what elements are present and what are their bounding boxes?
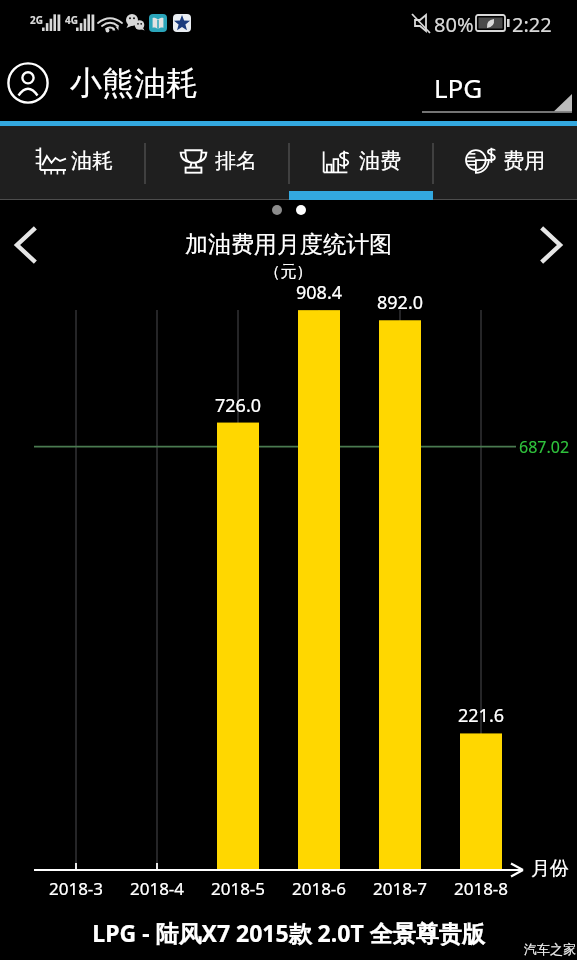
staticText: 221.6 bbox=[441, 703, 521, 728]
staticText: 小熊油耗 bbox=[70, 63, 198, 103]
staticText: 80% bbox=[434, 11, 474, 38]
other: Account bbox=[7, 62, 49, 104]
staticText: 2G bbox=[30, 13, 43, 27]
staticText: 2018-8 bbox=[437, 877, 525, 900]
staticText: LPG bbox=[434, 70, 483, 105]
button[interactable]: 排名 bbox=[145, 126, 289, 200]
button[interactable]: Previous month range bbox=[8, 222, 44, 268]
button[interactable]: LPG bbox=[414, 55, 572, 113]
staticText: 2018-6 bbox=[275, 877, 363, 900]
staticText: 908.4 bbox=[279, 280, 359, 305]
staticText: 汽车之家 bbox=[524, 941, 576, 957]
button[interactable]: 油费 bbox=[289, 126, 433, 200]
staticText: 4G bbox=[65, 13, 78, 27]
staticText: （元） bbox=[0, 262, 577, 282]
button[interactable]: 油耗 bbox=[0, 126, 145, 200]
staticText: 726.0 bbox=[198, 393, 278, 418]
staticText: 2018-4 bbox=[113, 877, 201, 900]
staticText: 加油费用月度统计图 bbox=[0, 230, 577, 259]
staticText: 2018-3 bbox=[32, 877, 120, 900]
staticText: 月份 bbox=[531, 857, 569, 881]
staticText: 892.0 bbox=[360, 290, 440, 315]
staticText: 687.02 bbox=[519, 436, 570, 458]
staticText: 油费 bbox=[359, 148, 401, 174]
button[interactable]: Account bbox=[7, 62, 198, 104]
staticText: 排名 bbox=[215, 148, 257, 174]
staticText: 2018-5 bbox=[194, 877, 282, 900]
button[interactable]: 费用 bbox=[433, 126, 577, 200]
staticText: 2018-7 bbox=[356, 877, 444, 900]
staticText: 费用 bbox=[503, 148, 545, 174]
staticText: 2:22 bbox=[512, 11, 552, 38]
button[interactable]: Next month range bbox=[533, 222, 569, 268]
staticText: 油耗 bbox=[71, 148, 113, 174]
staticText: LPG - 陆风X7 2015款 2.0T 全景尊贵版 bbox=[0, 917, 577, 948]
